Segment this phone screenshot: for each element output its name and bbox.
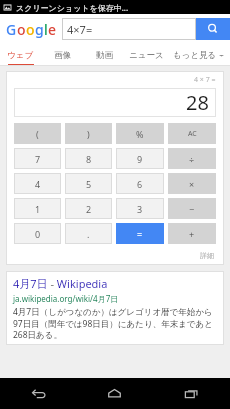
staticText: (	[36, 128, 39, 140]
staticText: 0	[35, 228, 41, 240]
button[interactable]: 4×7=	[62, 18, 196, 40]
staticText: 4 × 7 =	[194, 75, 216, 85]
staticText: 4×7=	[67, 22, 93, 37]
button[interactable]: ×	[168, 173, 216, 194]
staticText: )	[87, 128, 90, 140]
button[interactable]: 動画	[83, 44, 125, 66]
staticText: .	[87, 228, 90, 240]
staticText: ×	[189, 178, 195, 190]
staticText: 9	[137, 153, 143, 165]
staticText: +	[189, 228, 195, 240]
staticText: もっと見る	[173, 50, 217, 61]
staticText: 4	[35, 178, 41, 190]
button[interactable]: 9	[116, 148, 164, 169]
button[interactable]: 4月7日 - Wikipedia	[6, 271, 224, 345]
button[interactable]: Recent apps	[153, 378, 230, 409]
button[interactable]: ウェブ	[0, 44, 41, 66]
staticText: AC	[188, 129, 197, 139]
button[interactable]: Home	[76, 378, 153, 409]
button[interactable]: Back	[0, 378, 76, 409]
button[interactable]: 3	[116, 198, 164, 219]
staticText: ja.wikipedia.org/wiki/4月7日	[13, 293, 119, 304]
button[interactable]: Search	[196, 18, 230, 40]
staticText: G	[6, 20, 17, 39]
staticText: スクリーンショットを保存中...	[16, 2, 129, 13]
staticText: e	[48, 20, 57, 39]
staticText: 6	[137, 178, 143, 190]
button[interactable]: 1	[14, 198, 61, 219]
button[interactable]: 28	[14, 88, 216, 117]
button[interactable]: .	[65, 223, 112, 244]
staticText: 2	[86, 203, 92, 215]
button[interactable]: (	[14, 123, 61, 144]
staticText: 詳細	[200, 251, 214, 260]
button[interactable]: もっと見る	[167, 44, 230, 66]
staticText: 動画	[96, 50, 113, 61]
button[interactable]: ÷	[168, 148, 216, 169]
button[interactable]: −	[168, 198, 216, 219]
button[interactable]: 7	[14, 148, 61, 169]
staticText: 3	[137, 203, 143, 215]
button[interactable]: ニュース	[125, 44, 167, 66]
button[interactable]: 画像	[41, 44, 83, 66]
staticText: ÷	[189, 153, 195, 165]
staticText: =	[137, 228, 143, 240]
staticText: 画像	[54, 50, 71, 61]
staticText: −	[189, 203, 195, 215]
staticText: 4月7日 - Wikipedia	[13, 276, 108, 291]
button[interactable]: +	[168, 223, 216, 244]
button[interactable]: 8	[65, 148, 112, 169]
staticText: 7	[35, 153, 41, 165]
button[interactable]: 詳細	[198, 249, 216, 262]
staticText: ウェブ	[7, 50, 34, 61]
staticText: g	[35, 20, 44, 39]
button[interactable]: 5	[65, 173, 112, 194]
staticText: ニュース	[129, 50, 164, 61]
button[interactable]: =	[116, 223, 164, 244]
button[interactable]: 6	[116, 173, 164, 194]
staticText: 28	[186, 89, 209, 116]
staticText: 1	[35, 203, 41, 215]
staticText: 4月7日（しがつなのか）はグレゴリオ暦で年始から97日目（閏年では98日目）にあ…	[13, 306, 217, 340]
button[interactable]: %	[116, 123, 164, 144]
staticText: 8	[86, 153, 92, 165]
staticText: %	[136, 128, 144, 140]
button[interactable]: 0	[14, 223, 61, 244]
button[interactable]: G	[0, 14, 62, 44]
staticText: l	[44, 20, 48, 39]
button[interactable]: AC	[168, 123, 216, 144]
staticText: o	[26, 20, 35, 39]
staticText: 5	[86, 178, 92, 190]
button[interactable]: 2	[65, 198, 112, 219]
staticText: o	[17, 20, 26, 39]
button[interactable]: 4	[14, 173, 61, 194]
button[interactable]: )	[65, 123, 112, 144]
